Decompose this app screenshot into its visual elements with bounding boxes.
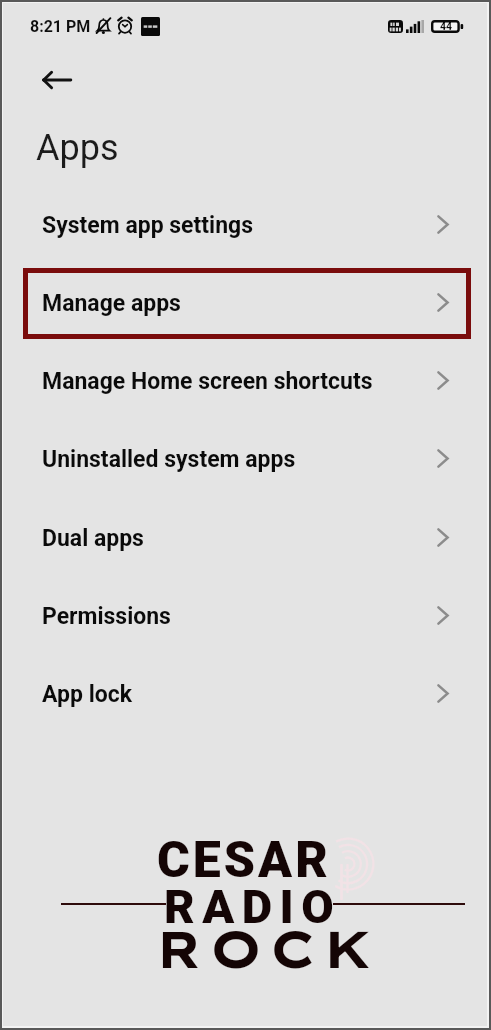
button[interactable]: System app settings bbox=[0, 206, 491, 284]
staticText: CESAR bbox=[157, 831, 331, 890]
staticText: App lock bbox=[42, 681, 133, 708]
staticText: System app settings bbox=[42, 212, 254, 239]
staticText: Manage apps bbox=[42, 290, 181, 317]
staticText: Manage Home screen shortcuts bbox=[42, 368, 373, 395]
staticText: Dual apps bbox=[42, 525, 144, 552]
button[interactable]: Uninstalled system apps bbox=[0, 440, 491, 518]
button[interactable]: Manage apps bbox=[0, 284, 491, 362]
button[interactable]: App lock bbox=[0, 675, 491, 753]
button[interactable]: Permissions bbox=[0, 597, 491, 675]
button[interactable]: Back bbox=[29, 57, 85, 103]
staticText: RADIO bbox=[164, 879, 342, 934]
staticText: 44 bbox=[440, 20, 453, 32]
button[interactable]: Manage Home screen shortcuts bbox=[0, 362, 491, 440]
staticText: Permissions bbox=[42, 603, 171, 630]
staticText: 8:21 PM bbox=[30, 17, 91, 36]
button[interactable]: Dual apps bbox=[0, 519, 491, 597]
staticText: ROCK bbox=[155, 917, 380, 981]
staticText: Apps bbox=[36, 127, 119, 169]
staticText: Uninstalled system apps bbox=[42, 446, 296, 473]
